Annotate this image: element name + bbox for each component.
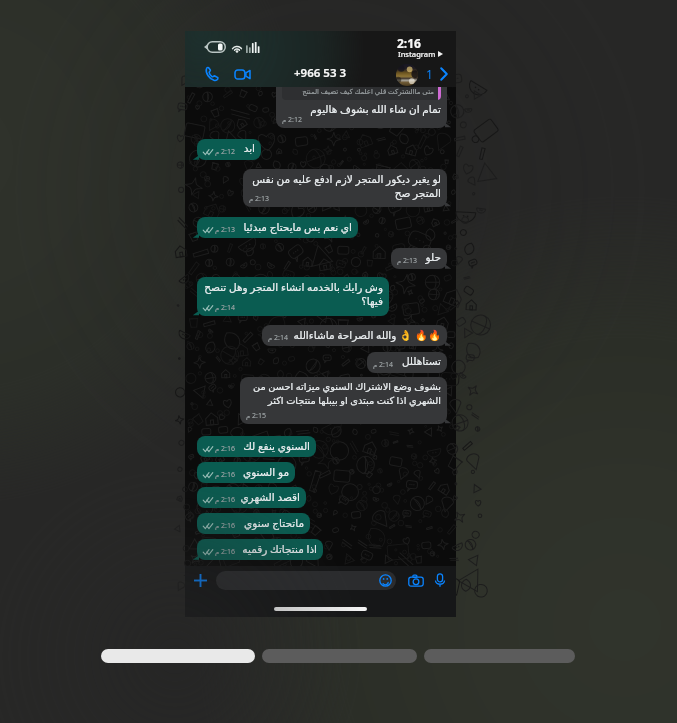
staticText: اذا منتجاتك رقميه [203, 542, 317, 556]
button[interactable]: Attach [189, 569, 211, 591]
button[interactable]: تستاهللل [367, 352, 447, 373]
staticText: 2:16 [221, 444, 235, 454]
staticText: م [215, 522, 220, 530]
staticText: تستاهللل [373, 355, 441, 367]
staticText: م [215, 304, 220, 312]
staticText: م [215, 445, 220, 453]
button[interactable]: Camera [404, 569, 428, 592]
staticText: م [215, 148, 220, 156]
staticText: ابد [203, 142, 255, 154]
staticText: ماتحتاج سنوي [203, 516, 304, 530]
staticText: 2:16 [397, 35, 421, 51]
button[interactable]: مو السنوي [197, 462, 295, 483]
staticText: م [268, 334, 273, 342]
staticText: م [215, 496, 220, 504]
button[interactable] [262, 649, 417, 663]
staticText: السنوي ينفع لك [203, 439, 310, 453]
button[interactable] [101, 649, 255, 663]
button[interactable] [424, 649, 575, 663]
staticText: م [397, 257, 402, 265]
button[interactable]: لو يغير ديكور المتجر لازم ادفع عليه من ن… [243, 169, 447, 207]
staticText: م [373, 361, 378, 369]
staticText: والله الصراحة ماشاءالله 👌 🔥🔥 [268, 328, 441, 342]
button[interactable]: اذا منتجاتك رقميه [197, 539, 323, 560]
staticText: تمام ان شاء الله بشوف هاليوم [282, 102, 441, 116]
staticText: م [215, 471, 220, 479]
button[interactable]: والله الصراحة ماشاءالله 👌 🔥🔥 [262, 325, 447, 346]
staticText: 2:12 [288, 115, 302, 125]
button[interactable]: Video call [229, 61, 255, 87]
staticText: متى ماالشتركت قلي اعلمك كيف تضيف المنتج [302, 87, 434, 97]
button[interactable]: اقصد الشهري [197, 487, 306, 508]
staticText: 1 [426, 66, 433, 82]
staticText: وش رايك بالخدمه انشاء المتجر وهل تنصح في… [203, 280, 383, 308]
staticText: 2:16 [221, 547, 235, 557]
staticText: 2:13 [221, 225, 235, 235]
button[interactable]: حلو [391, 248, 447, 269]
staticText: حلو [397, 251, 441, 263]
button[interactable]: ابد [197, 139, 261, 160]
staticText: اقصد الشهري [203, 490, 300, 504]
button[interactable] [216, 571, 396, 590]
button[interactable]: Voice call [199, 61, 225, 87]
staticText: Instagram [398, 49, 436, 59]
staticText: 2:15 [252, 411, 266, 421]
staticText: لو يغير ديكور المتجر لازم ادفع عليه من ن… [249, 172, 441, 200]
button[interactable]: Voice message [431, 568, 449, 592]
staticText: م [215, 226, 220, 234]
staticText: م [215, 548, 220, 556]
staticText: اي نعم بس مايحتاج مبدئيا [203, 220, 352, 234]
staticText: م [249, 195, 254, 203]
staticText: 2:14 [221, 303, 235, 313]
button[interactable]: اي نعم بس مايحتاج مبدئيا [197, 217, 358, 238]
button[interactable]: متى ماالشتركت قلي اعلمك كيف تضيف المنتج [276, 76, 447, 128]
staticText: م [246, 412, 251, 420]
button[interactable]: بشوف وضع الاشتراك السنوي ميزاته احسن من … [240, 377, 447, 424]
button[interactable]: وش رايك بالخدمه انشاء المتجر وهل تنصح في… [197, 277, 389, 316]
staticText: مو السنوي [203, 465, 289, 479]
button[interactable]: السنوي ينفع لك [197, 436, 316, 457]
staticText: 2:14 [379, 360, 393, 370]
staticText: م [282, 116, 287, 124]
button[interactable]: Back [435, 62, 453, 86]
staticText: +966 53 3 [294, 65, 347, 81]
staticText: 2:16 [221, 521, 235, 531]
staticText: 2:16 [221, 470, 235, 480]
staticText: 2:16 [221, 495, 235, 505]
staticText: 2:13 [403, 256, 417, 266]
staticText: بشوف وضع الاشتراك السنوي ميزاته احسن من … [246, 380, 441, 406]
button[interactable]: Contact info [396, 64, 418, 86]
staticText: 2:13 [255, 194, 269, 204]
staticText: 2:12 [221, 147, 235, 157]
button[interactable]: ماتحتاج سنوي [197, 513, 310, 534]
staticText: 2:14 [274, 333, 288, 343]
